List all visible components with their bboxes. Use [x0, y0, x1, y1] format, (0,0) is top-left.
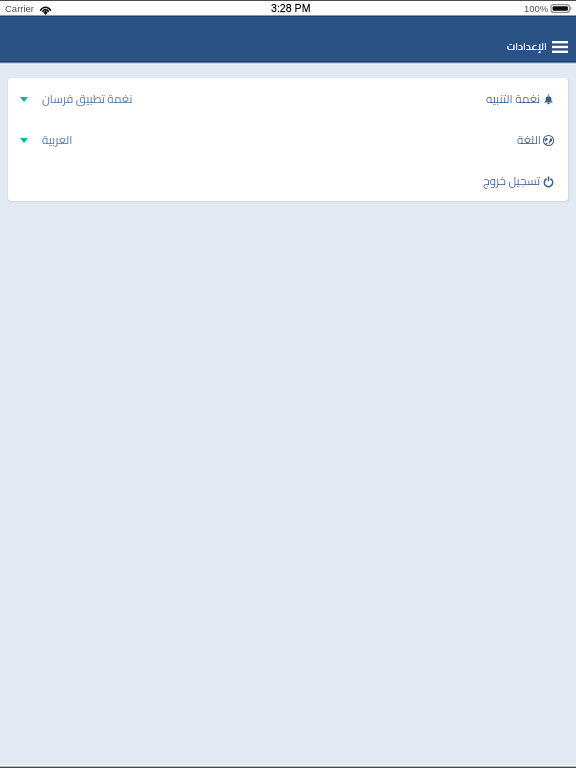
staticText: 3:28 PM [271, 2, 311, 14]
button[interactable]: العربية [8, 119, 568, 160]
button[interactable]: تسجيل خروج [8, 160, 568, 201]
staticText: نغمة التنبيه [486, 88, 541, 110]
button[interactable]: نغمة تطبيق فرسان [8, 78, 568, 119]
staticText: نغمة تطبيق فرسان [42, 88, 133, 110]
staticText: 100% [524, 3, 549, 14]
staticText: العربية [42, 129, 73, 151]
button[interactable]: Menu [551, 38, 568, 55]
staticText: تسجيل خروج [483, 170, 541, 192]
staticText: Carrier [5, 3, 35, 14]
staticText: الإعدادات [507, 37, 547, 56]
staticText: اللغة [517, 129, 541, 151]
